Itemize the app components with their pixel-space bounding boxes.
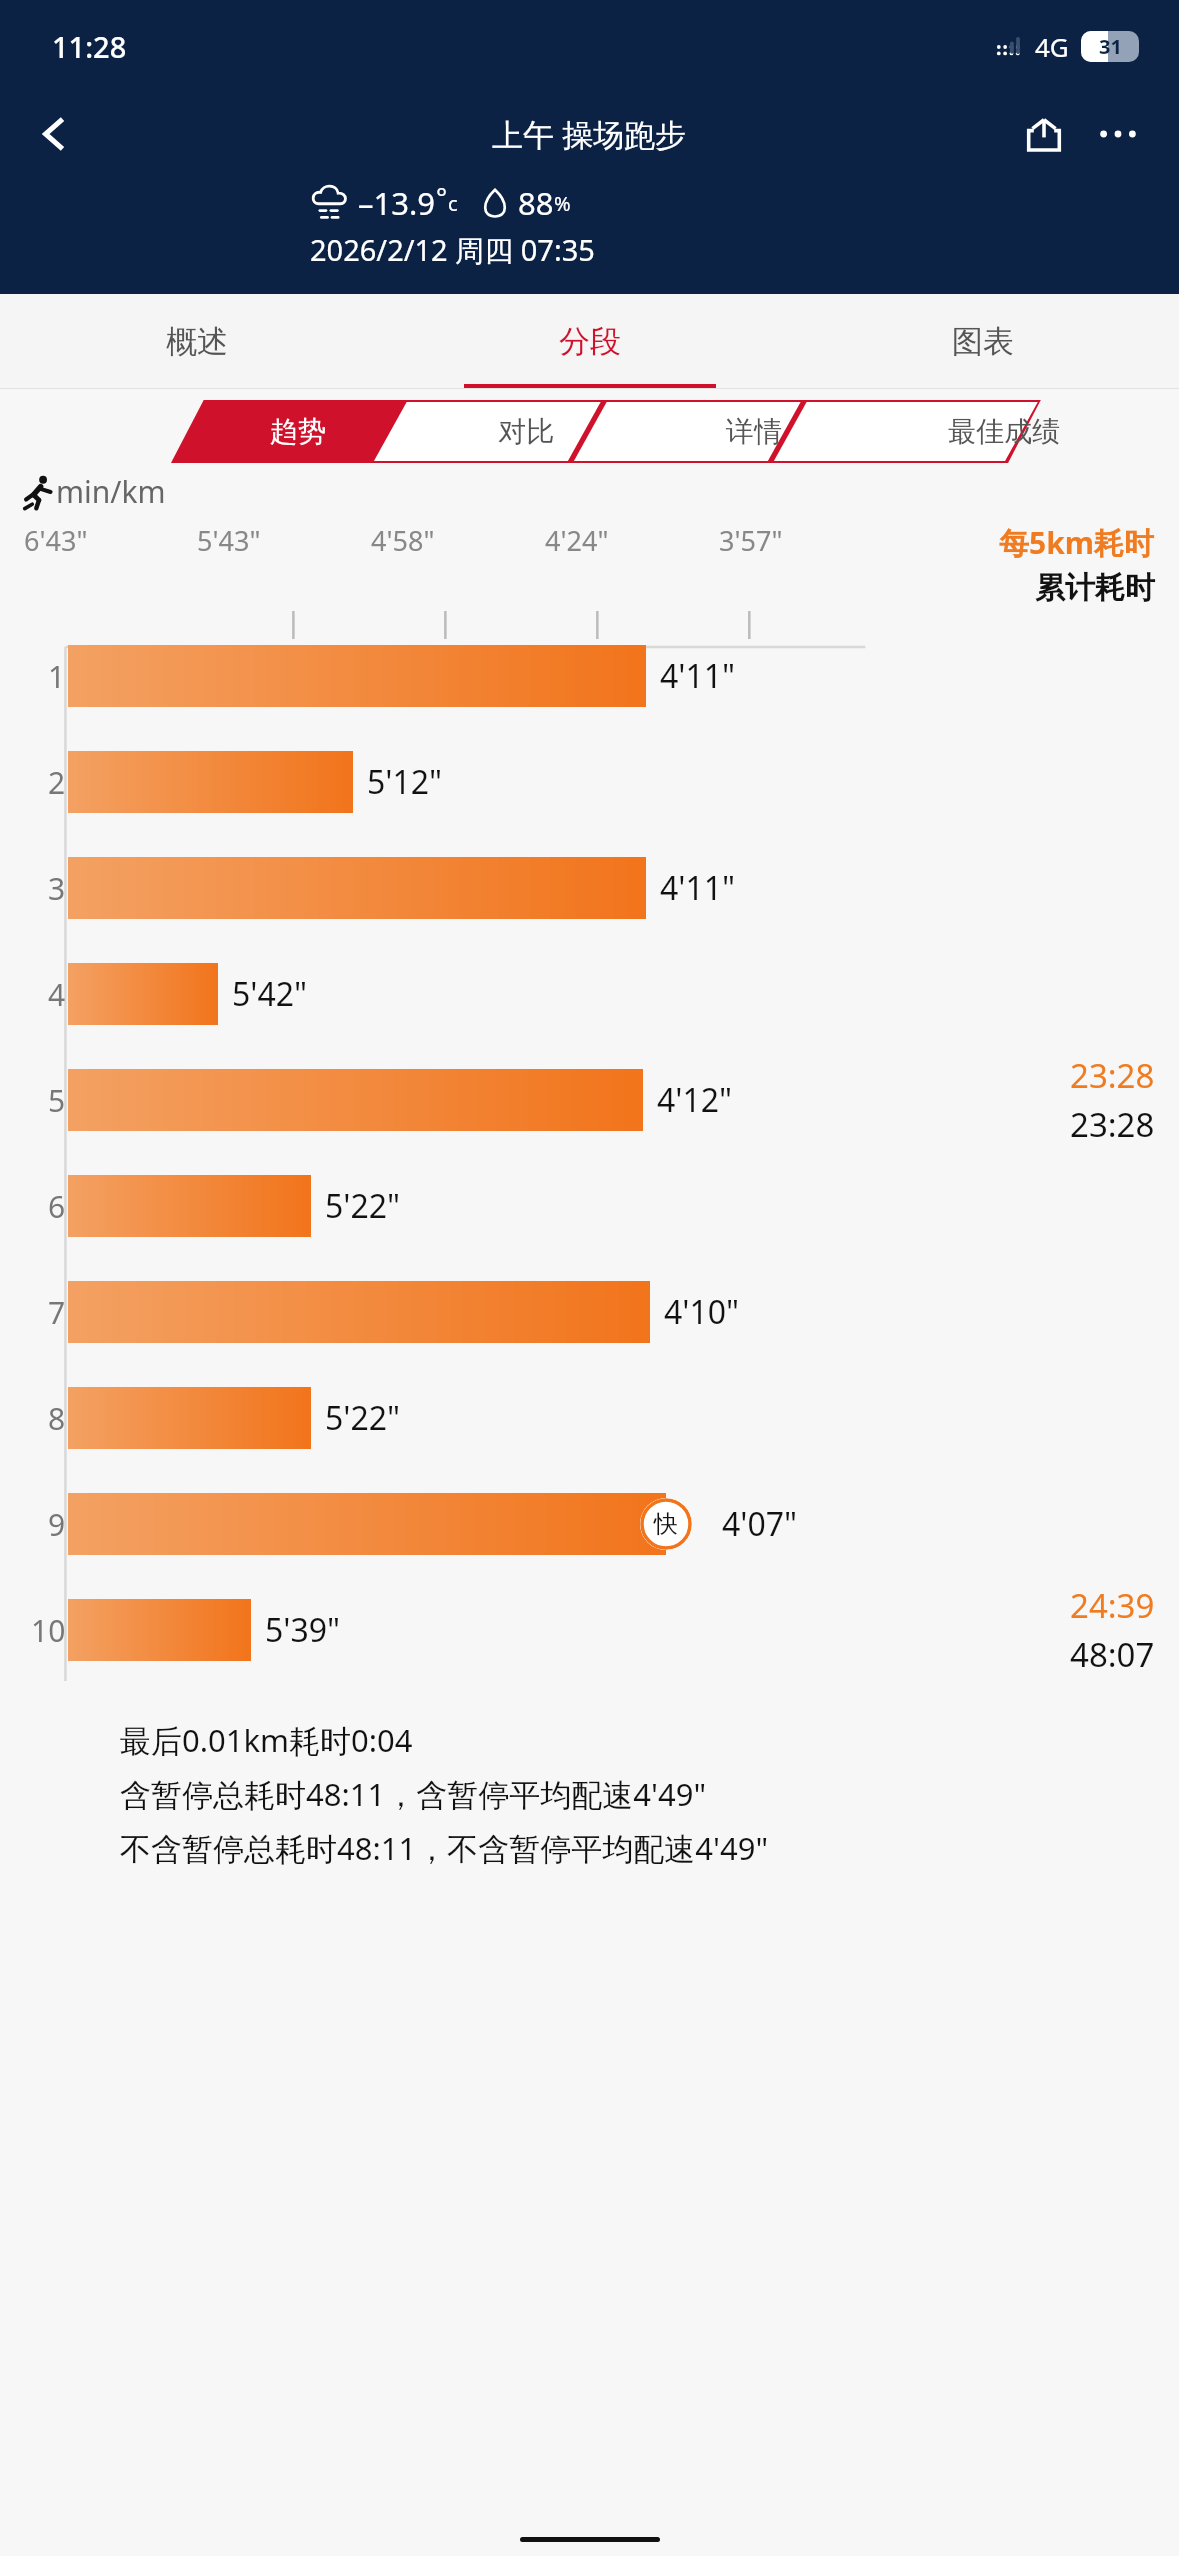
staticText: 4'11" (660, 654, 736, 698)
staticText: 2026/2/12 周四 07:35 (310, 230, 595, 270)
staticText: 图表 (952, 322, 1014, 361)
staticText: min/km (56, 471, 166, 512)
staticText: 6 (48, 1186, 66, 1227)
staticText: 88 (518, 182, 554, 224)
staticText: % (554, 190, 571, 217)
staticText: 概述 (166, 322, 228, 361)
button[interactable]: 分段 (393, 294, 786, 389)
button[interactable]: 对比 (412, 400, 640, 463)
staticText: 对比 (498, 414, 554, 449)
staticText: 3'57" (719, 522, 783, 559)
staticText: 4 (48, 974, 66, 1015)
button[interactable]: 图表 (786, 294, 1179, 389)
staticText: 1 (48, 656, 66, 697)
staticText: 24:39 (1070, 1583, 1155, 1628)
staticText: 4'24" (545, 522, 609, 559)
staticText: 2 (48, 762, 66, 803)
staticText: –13.9 (358, 182, 436, 224)
staticText: 含暂停总耗时48:11，含暂停平均配速4'49" (120, 1773, 707, 1815)
staticText: 4G (1035, 29, 1069, 64)
staticText: 5 (48, 1080, 66, 1121)
staticText: 上午 操场跑步 (492, 113, 687, 155)
staticText: 31 (1099, 33, 1122, 60)
staticText: 7 (48, 1292, 66, 1333)
staticText: c (448, 190, 458, 217)
staticText: 最后0.01km耗时0:04 (120, 1719, 413, 1761)
staticText: 5'22" (325, 1396, 401, 1440)
staticText: 4'07" (722, 1502, 798, 1546)
button[interactable]: Share (1013, 103, 1075, 165)
staticText: 11:28 (52, 27, 127, 66)
staticText: 分段 (559, 322, 621, 361)
staticText: 4'10" (664, 1290, 740, 1334)
staticText: 48:07 (1070, 1632, 1155, 1677)
staticText: 9 (48, 1504, 66, 1545)
button[interactable]: 趋势 (183, 400, 412, 463)
button[interactable]: Back (26, 106, 82, 162)
staticText: 5'42" (232, 972, 308, 1016)
staticText: 累计耗时 (1035, 569, 1155, 607)
staticText: 23:28 (1070, 1053, 1155, 1098)
button[interactable]: More options (1087, 103, 1149, 165)
staticText: ° (436, 179, 448, 214)
staticText: 详情 (726, 414, 782, 449)
staticText: 不含暂停总耗时48:11，不含暂停平均配速4'49" (120, 1827, 769, 1869)
staticText: 趋势 (270, 414, 326, 449)
staticText: 10 (31, 1610, 66, 1651)
staticText: 4'12" (657, 1078, 733, 1122)
staticText: 5'39" (265, 1608, 341, 1652)
staticText: 每5km耗时 (999, 522, 1155, 563)
button[interactable]: 最佳成绩 (868, 400, 1139, 463)
button[interactable]: 概述 (0, 294, 393, 389)
staticText: 4'11" (660, 866, 736, 910)
staticText: 5'22" (325, 1184, 401, 1228)
staticText: 4'58" (371, 522, 435, 559)
button[interactable]: 详情 (640, 400, 868, 463)
staticText: 快 (654, 1509, 678, 1539)
staticText: 最佳成绩 (948, 414, 1060, 449)
staticText: 5'43" (197, 522, 261, 559)
staticText: 23:28 (1070, 1102, 1155, 1147)
staticText: 5'12" (367, 760, 443, 804)
staticText: 3 (48, 868, 66, 909)
staticText: 8 (48, 1398, 66, 1439)
staticText: 6'43" (24, 522, 88, 559)
